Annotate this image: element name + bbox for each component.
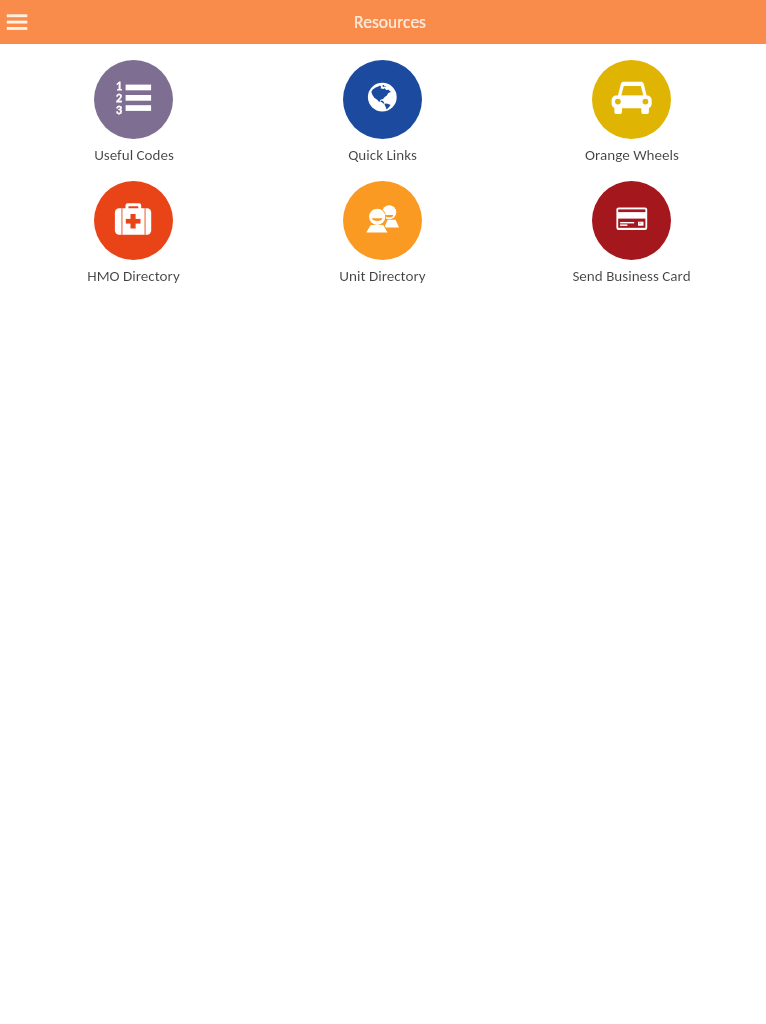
button[interactable]: Orange Wheels: [507, 60, 756, 164]
staticText: 2: [116, 91, 123, 106]
button[interactable]: Quick Links: [258, 60, 507, 164]
staticText: Orange Wheels: [585, 146, 679, 164]
staticText: 1: [116, 79, 123, 94]
button[interactable]: Send Business Card: [507, 181, 756, 285]
staticText: HMO Directory: [87, 267, 180, 285]
staticText: Resources: [354, 11, 426, 32]
button[interactable]: HMO Directory: [9, 181, 258, 285]
staticText: 3: [116, 103, 123, 118]
staticText: Send Business Card: [572, 267, 691, 285]
button[interactable]: Open navigation menu: [0, 0, 34, 44]
staticText: Useful Codes: [94, 146, 174, 164]
button[interactable]: 1: [9, 60, 258, 164]
button[interactable]: Unit Directory: [258, 181, 507, 285]
staticText: Unit Directory: [339, 267, 426, 285]
staticText: Quick Links: [348, 146, 417, 164]
